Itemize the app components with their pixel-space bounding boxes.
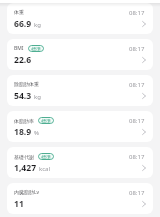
staticText: 標準 [41,118,51,124]
button[interactable]: 基礎代謝 [7,147,153,178]
staticText: % [34,129,39,137]
staticText: kg [34,93,41,101]
staticText: 18.9 [14,126,32,138]
staticText: BMI [14,45,24,52]
other: Open details [142,201,146,207]
button[interactable]: 体重 [7,3,153,34]
button[interactable]: 除脂肪体重 [7,75,153,106]
staticText: kg [34,21,41,29]
staticText: 標準 [31,46,41,52]
staticText: 54.3 [14,90,32,102]
button[interactable]: BMI [7,39,153,70]
staticText: 22.6 [14,54,32,66]
staticText: 内臓脂肪Lv [14,189,40,196]
other: Open details [142,21,146,27]
staticText: 08:17 [129,189,145,197]
staticText: 08:17 [129,81,145,89]
button[interactable]: 体脂肪率 [7,111,153,142]
other: Open details [142,129,146,135]
staticText: 体脂肪率 [14,118,34,124]
staticText: 1,427 [14,162,37,174]
staticText: 体重 [14,9,24,15]
other: Open details [142,57,146,63]
staticText: 08:17 [129,153,145,161]
staticText: 08:17 [129,45,145,53]
staticText: 08:17 [129,9,145,17]
other: Open details [142,165,146,171]
staticText: kcal [39,165,50,173]
staticText: 標準 [41,154,51,160]
staticText: 除脂肪体重 [14,81,39,87]
staticText: 11 [14,198,24,210]
staticText: 基礎代謝 [14,154,34,160]
other: Open details [142,93,146,99]
button[interactable]: 内臓脂肪Lv [7,183,153,214]
staticText: 66.9 [14,18,32,30]
staticText: 08:17 [129,117,145,125]
